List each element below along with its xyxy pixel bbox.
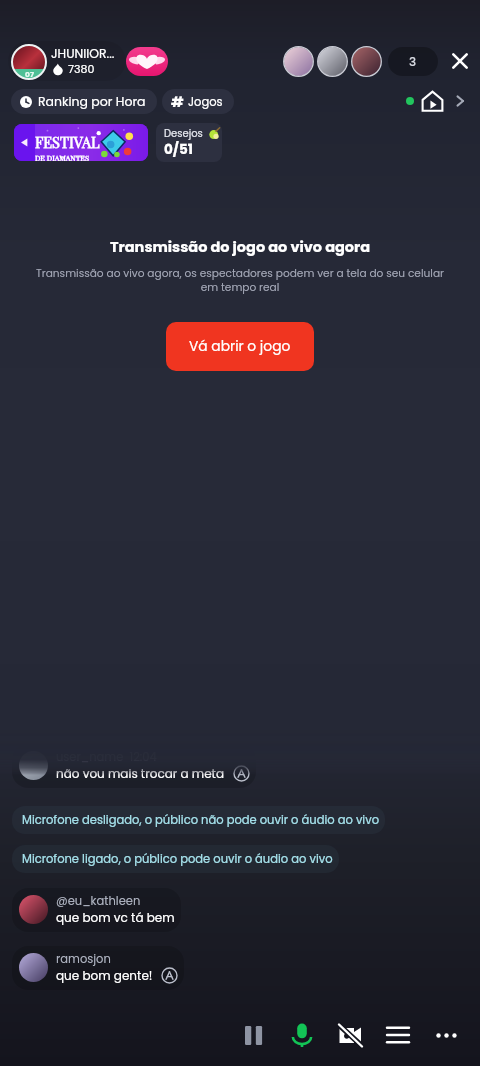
button[interactable]: Close (443, 44, 477, 78)
staticText: Desejos (164, 126, 203, 140)
button[interactable]: Camera off (326, 1011, 374, 1059)
button[interactable]: Viewer profile (318, 47, 347, 76)
button[interactable]: 07 (8, 41, 126, 81)
button[interactable]: Live studio (419, 88, 445, 114)
button[interactable]: Ranking por Hora (11, 89, 157, 114)
button[interactable]: Menu (374, 1011, 422, 1059)
staticText: Jogos (188, 94, 223, 110)
button[interactable]: Microfone ligado, o público pode ouvir o… (12, 845, 339, 873)
staticText: Microfone desligado, o público não pode … (22, 812, 379, 828)
staticText: Transmissão do jogo ao vivo agora (110, 237, 371, 257)
staticText: Microfone ligado, o público pode ouvir o… (22, 851, 333, 867)
button[interactable]: Send gift (126, 47, 168, 76)
button[interactable]: Desejos (156, 123, 222, 162)
staticText: @eu_kathleen (56, 893, 141, 909)
staticText: DE DIAMANTES (35, 153, 89, 161)
button[interactable]: 3 (388, 47, 438, 76)
button[interactable]: Microfone desligado, o público não pode … (12, 806, 385, 834)
button[interactable]: user_name 12:04 (12, 744, 256, 788)
button[interactable]: Vá abrir o jogo (166, 322, 314, 371)
button[interactable]: Expand (450, 91, 470, 111)
staticText: que bom vc tá bem (56, 909, 175, 926)
button[interactable]: Viewer profile (284, 47, 313, 76)
staticText: 0/51 (164, 140, 193, 159)
staticText: 07 (25, 69, 34, 79)
staticText: 3 (409, 53, 417, 70)
button[interactable]: @eu_kathleen (12, 888, 181, 932)
staticText: Ranking por Hora (38, 93, 146, 110)
staticText: 7380 (68, 61, 95, 76)
staticText: Transmissão ao vivo agora, os espectador… (32, 266, 448, 295)
staticText: não vou mais trocar a meta (56, 765, 225, 782)
button[interactable]: Viewer profile (352, 47, 381, 76)
staticText: Vá abrir o jogo (189, 337, 291, 356)
staticText: # (171, 92, 184, 112)
button[interactable]: # (162, 89, 234, 114)
button[interactable]: ramosjon (12, 946, 184, 990)
staticText: JHUNIIOR... (51, 45, 115, 62)
staticText: FESTIVAL (35, 132, 100, 151)
button[interactable]: More options (422, 1011, 470, 1059)
staticText: que bom gente! (56, 967, 153, 984)
button[interactable]: Pause (230, 1011, 278, 1059)
button[interactable]: Microphone on (278, 1011, 326, 1059)
staticText: ramosjon (56, 951, 111, 967)
button[interactable]: FESTIVAL (14, 124, 148, 161)
